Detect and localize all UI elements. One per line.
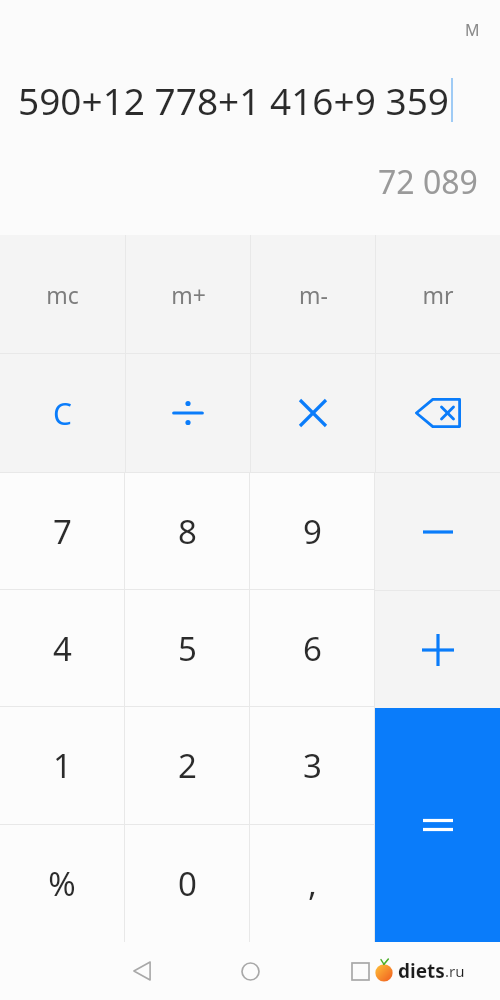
staticText: 0	[178, 861, 197, 906]
staticText: 9	[303, 509, 322, 554]
staticText: mr	[422, 279, 454, 310]
staticText: m+	[171, 279, 206, 310]
button[interactable]: C	[0, 354, 125, 472]
button[interactable]: 2	[125, 707, 249, 824]
button[interactable]: mr	[376, 235, 500, 353]
staticText: M	[465, 19, 480, 41]
button[interactable]: 5	[125, 590, 249, 706]
staticText: .ru	[445, 961, 465, 981]
button[interactable]: 0	[125, 825, 249, 942]
staticText: ,	[308, 861, 317, 906]
button[interactable]: Plus	[375, 591, 500, 708]
button[interactable]: m+	[126, 235, 250, 353]
button[interactable]: mc	[0, 235, 125, 353]
button[interactable]: %	[0, 825, 124, 942]
staticText: 8	[178, 509, 197, 554]
staticText: 1	[53, 743, 72, 788]
staticText: m-	[299, 279, 328, 310]
staticText: 590+12 778+1 416+9 359	[18, 75, 449, 125]
button[interactable]: Multiply	[251, 354, 375, 472]
staticText: mc	[46, 279, 79, 310]
button[interactable]: 1	[0, 707, 124, 824]
button[interactable]: Home	[228, 949, 272, 993]
staticText: 4	[53, 626, 72, 671]
button[interactable]: ,	[250, 825, 374, 942]
button[interactable]: m-	[251, 235, 375, 353]
staticText: 6	[303, 626, 322, 671]
button[interactable]: 9	[250, 473, 374, 589]
button[interactable]: 3	[250, 707, 374, 824]
staticText: C	[53, 393, 72, 434]
button[interactable]: Equals	[375, 708, 500, 942]
staticText: 7	[53, 509, 72, 554]
button[interactable]: Divide	[126, 354, 250, 472]
staticText: 5	[178, 626, 197, 671]
staticText: 3	[303, 743, 322, 788]
button[interactable]: 6	[250, 590, 374, 706]
staticText: %	[48, 861, 76, 906]
button[interactable]: Minus	[375, 473, 500, 590]
button[interactable]: 7	[0, 473, 124, 589]
staticText: 72 089	[378, 160, 478, 204]
button[interactable]: Backspace	[376, 354, 500, 472]
button[interactable]: Recent apps	[338, 949, 382, 993]
staticText: 2	[178, 743, 197, 788]
button[interactable]: 8	[125, 473, 249, 589]
button[interactable]: 4	[0, 590, 124, 706]
staticText: diets	[398, 958, 445, 984]
button[interactable]: Back	[120, 949, 164, 993]
